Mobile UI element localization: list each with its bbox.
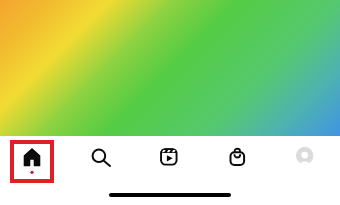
button[interactable]: Search [77, 139, 121, 183]
button[interactable]: Home [10, 139, 54, 183]
button[interactable]: Reels [147, 139, 191, 183]
button[interactable]: Shop [215, 139, 259, 183]
button[interactable]: Profile [283, 139, 327, 183]
